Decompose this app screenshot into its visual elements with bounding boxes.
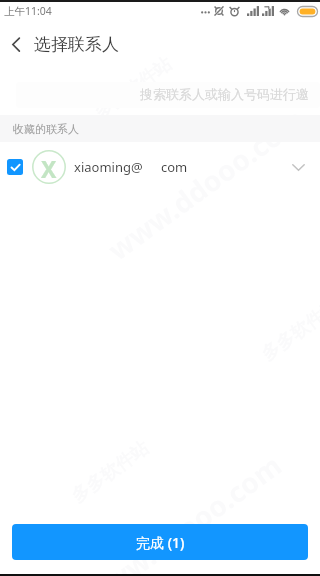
staticText: 收藏的联系人 bbox=[13, 122, 79, 136]
staticText: com bbox=[161, 158, 188, 176]
button[interactable]: Back bbox=[0, 27, 32, 61]
button[interactable]: Expand bbox=[281, 150, 315, 184]
button[interactable]: 搜索联系人或输入号码进行邀 bbox=[0, 64, 320, 115]
staticText: 选择联系人 bbox=[34, 34, 119, 55]
button[interactable]: X bbox=[0, 142, 320, 191]
staticText: www.ddooo.com bbox=[100, 100, 312, 268]
staticText: X bbox=[41, 153, 57, 184]
staticText: 完成 (1) bbox=[136, 533, 185, 552]
staticText: 搜索联系人或输入号码进行邀 bbox=[140, 86, 309, 102]
button[interactable]: 完成 (1) bbox=[12, 524, 308, 560]
staticText: 上午11:04 bbox=[4, 4, 52, 18]
staticText: xiaoming@ bbox=[74, 158, 143, 176]
staticText: 多多软件站 bbox=[90, 53, 176, 124]
staticText: www.ddooo.com bbox=[77, 446, 289, 576]
